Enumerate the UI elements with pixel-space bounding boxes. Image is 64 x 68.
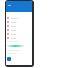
button[interactable] <box>6 20 32 24</box>
button[interactable] <box>6 16 32 20</box>
button[interactable]: Open app <box>7 57 11 61</box>
button[interactable]: Inbox app bar <box>6 1 32 12</box>
button[interactable]: Promotion <box>7 45 24 47</box>
button[interactable] <box>6 28 32 32</box>
button[interactable] <box>6 36 32 40</box>
button[interactable] <box>6 32 32 36</box>
button[interactable] <box>6 24 32 28</box>
